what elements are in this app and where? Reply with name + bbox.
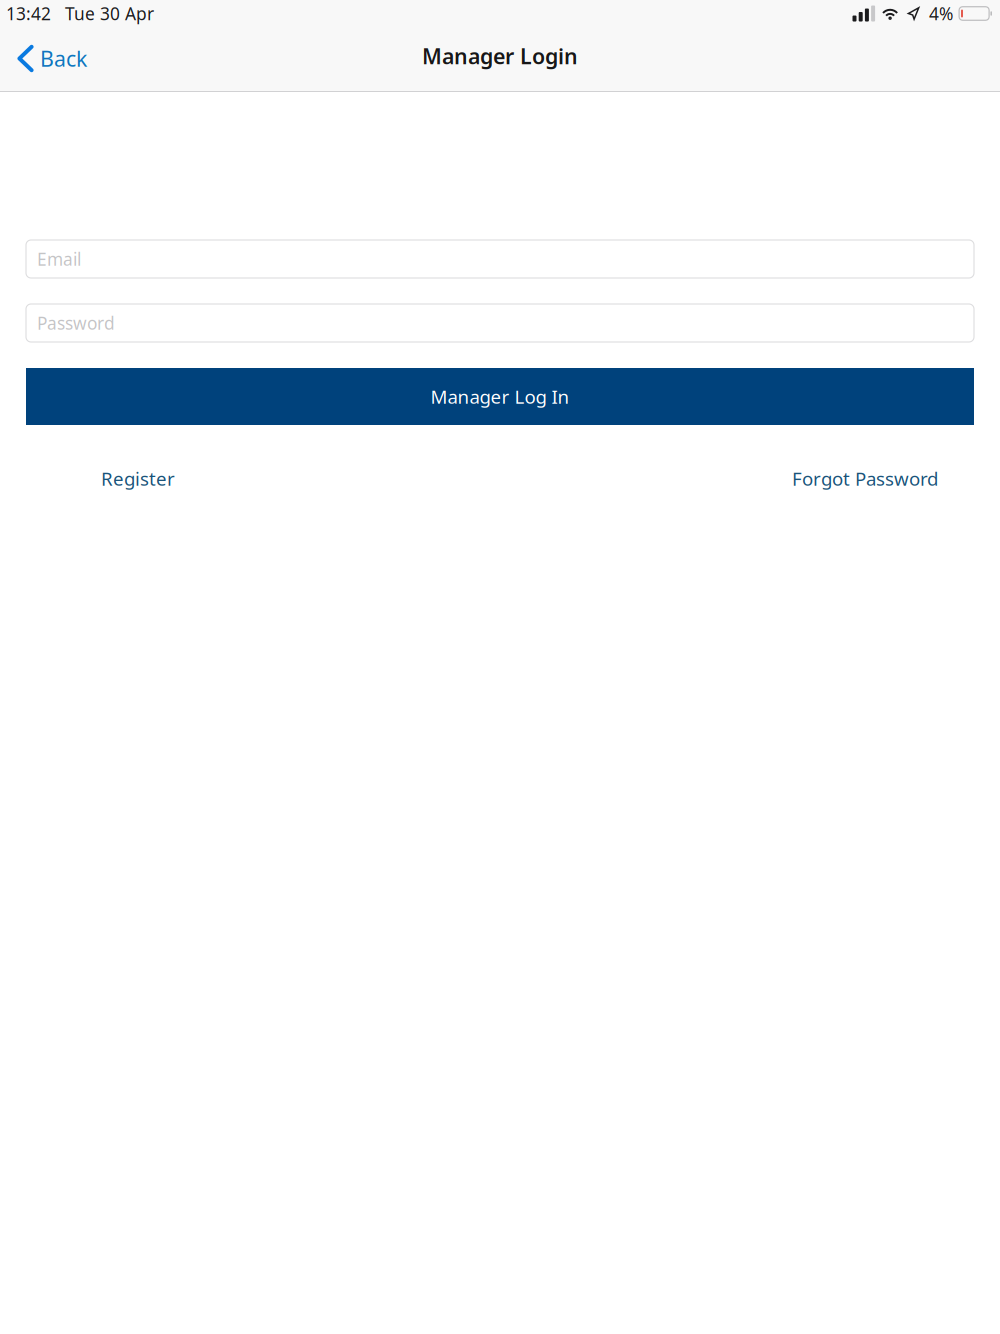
staticText: 13:42 <box>6 2 51 25</box>
staticText: 4% <box>929 2 953 25</box>
button[interactable]: Forgot Password <box>756 459 974 498</box>
staticText: Back <box>40 44 87 73</box>
staticText: Password <box>37 311 115 334</box>
button[interactable]: Back <box>0 36 101 83</box>
staticText: Manager Log In <box>430 384 569 409</box>
staticText: Email <box>37 247 81 270</box>
button[interactable]: Manager Log In <box>26 368 974 425</box>
button[interactable]: Register <box>26 459 250 498</box>
staticText: Forgot Password <box>792 466 938 491</box>
staticText: Register <box>101 466 175 491</box>
staticText: Manager Login <box>422 42 578 70</box>
staticText: Tue 30 Apr <box>65 2 154 25</box>
